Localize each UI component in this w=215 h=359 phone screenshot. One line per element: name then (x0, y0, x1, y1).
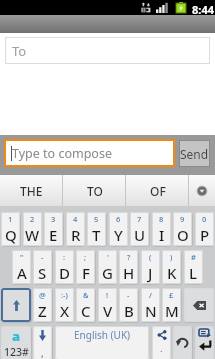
staticText: English (UK) (74, 328, 131, 342)
staticText: S (38, 263, 47, 283)
staticText: 4 (73, 214, 78, 224)
staticText: B (124, 301, 134, 321)
staticText: ' (107, 252, 109, 262)
staticText: A (17, 263, 27, 283)
button[interactable]: @ (33, 288, 52, 322)
button[interactable]: 4 (66, 212, 85, 246)
staticText: 2 (30, 214, 35, 224)
button[interactable]: THE (0, 175, 63, 206)
staticText: TO (87, 183, 103, 199)
staticText: K (167, 263, 177, 283)
button[interactable]: £ (162, 288, 181, 322)
button[interactable]: TO (63, 175, 126, 206)
staticText: " (20, 252, 24, 262)
button[interactable]: Delete (184, 288, 214, 322)
staticText: 1 (8, 214, 13, 224)
button[interactable]: 7 (130, 212, 149, 246)
button[interactable]: Send (179, 140, 210, 167)
button[interactable]: :-) (55, 288, 74, 322)
staticText: 9 (180, 214, 185, 224)
staticText: W (25, 225, 40, 245)
button[interactable]: - (119, 288, 138, 322)
staticText: Z (38, 301, 47, 321)
button[interactable]: 1 (1, 212, 20, 246)
button[interactable]: Share (152, 326, 171, 359)
staticText: R (71, 225, 81, 245)
staticText: ; (84, 252, 87, 262)
staticText: D (59, 263, 70, 283)
staticText: 5 (94, 214, 99, 224)
button[interactable]: 6 (109, 212, 128, 246)
button[interactable]: ( (141, 250, 160, 284)
staticText: I (159, 225, 165, 245)
button[interactable]: English (UK) (55, 326, 149, 359)
button[interactable]: Symbols (1, 326, 31, 359)
staticText: X (60, 301, 70, 321)
button[interactable]: ! (98, 288, 117, 322)
staticText: ( (149, 252, 152, 262)
button[interactable]: 2 (23, 212, 42, 246)
staticText: 6 (116, 214, 121, 224)
button[interactable]: 5 (87, 212, 106, 246)
staticText: , (41, 346, 44, 359)
staticText: 8 (159, 214, 164, 224)
button[interactable]: Type to compose (6, 141, 173, 165)
staticText: 8:44 (192, 2, 214, 17)
staticText: J (148, 263, 153, 283)
button[interactable]: 3 (44, 212, 63, 246)
button[interactable]: Shift (1, 288, 31, 322)
staticText: ? (127, 252, 131, 262)
staticText: V (103, 301, 113, 321)
button[interactable]: To (5, 37, 210, 64)
button[interactable]: " (12, 250, 31, 284)
staticText: H (123, 263, 135, 283)
staticText: E (49, 225, 58, 245)
staticText: - (41, 252, 44, 262)
staticText: G (102, 263, 113, 283)
staticText: Send (180, 146, 209, 162)
staticText: & (83, 290, 89, 300)
staticText: @ (39, 290, 46, 300)
button[interactable]: Undo (173, 326, 192, 359)
staticText: OF (150, 183, 166, 199)
staticText: F (82, 263, 90, 283)
button[interactable]: 8 (152, 212, 171, 246)
button[interactable]: & (76, 288, 95, 322)
button[interactable]: : (55, 250, 74, 284)
button[interactable]: ; (76, 250, 95, 284)
staticText: # (191, 252, 196, 262)
staticText: 0 (202, 214, 207, 224)
staticText: To (12, 42, 27, 60)
button[interactable]: Voice input (33, 326, 52, 359)
staticText: M (165, 301, 179, 321)
staticText: Type to compose (12, 145, 112, 162)
button[interactable]: Enter (195, 326, 214, 359)
staticText: / (149, 290, 152, 300)
staticText: O (177, 225, 189, 245)
staticText: 3 (51, 214, 56, 224)
staticText: L (189, 263, 198, 283)
button[interactable]: # (184, 250, 203, 284)
staticText: U (134, 225, 146, 245)
staticText: N (145, 301, 157, 321)
button[interactable]: ? (119, 250, 138, 284)
button[interactable]: OF (126, 175, 189, 206)
staticText: THE (20, 183, 43, 199)
staticText: : (63, 252, 66, 262)
button[interactable]: 0 (195, 212, 214, 246)
staticText: T (92, 225, 101, 245)
button[interactable]: / (141, 288, 160, 322)
staticText: 7 (137, 214, 142, 224)
staticText: 123# (4, 345, 29, 359)
button[interactable]: ) (162, 250, 181, 284)
staticText: . (160, 342, 163, 354)
button[interactable]: 9 (173, 212, 192, 246)
staticText: C (81, 301, 91, 321)
staticText: - (127, 290, 130, 300)
button[interactable]: - (33, 250, 52, 284)
staticText: a (12, 327, 21, 345)
staticText: :-) (61, 290, 68, 300)
staticText: ! (106, 290, 109, 300)
button[interactable]: More suggestions (189, 175, 215, 206)
button[interactable]: ' (98, 250, 117, 284)
